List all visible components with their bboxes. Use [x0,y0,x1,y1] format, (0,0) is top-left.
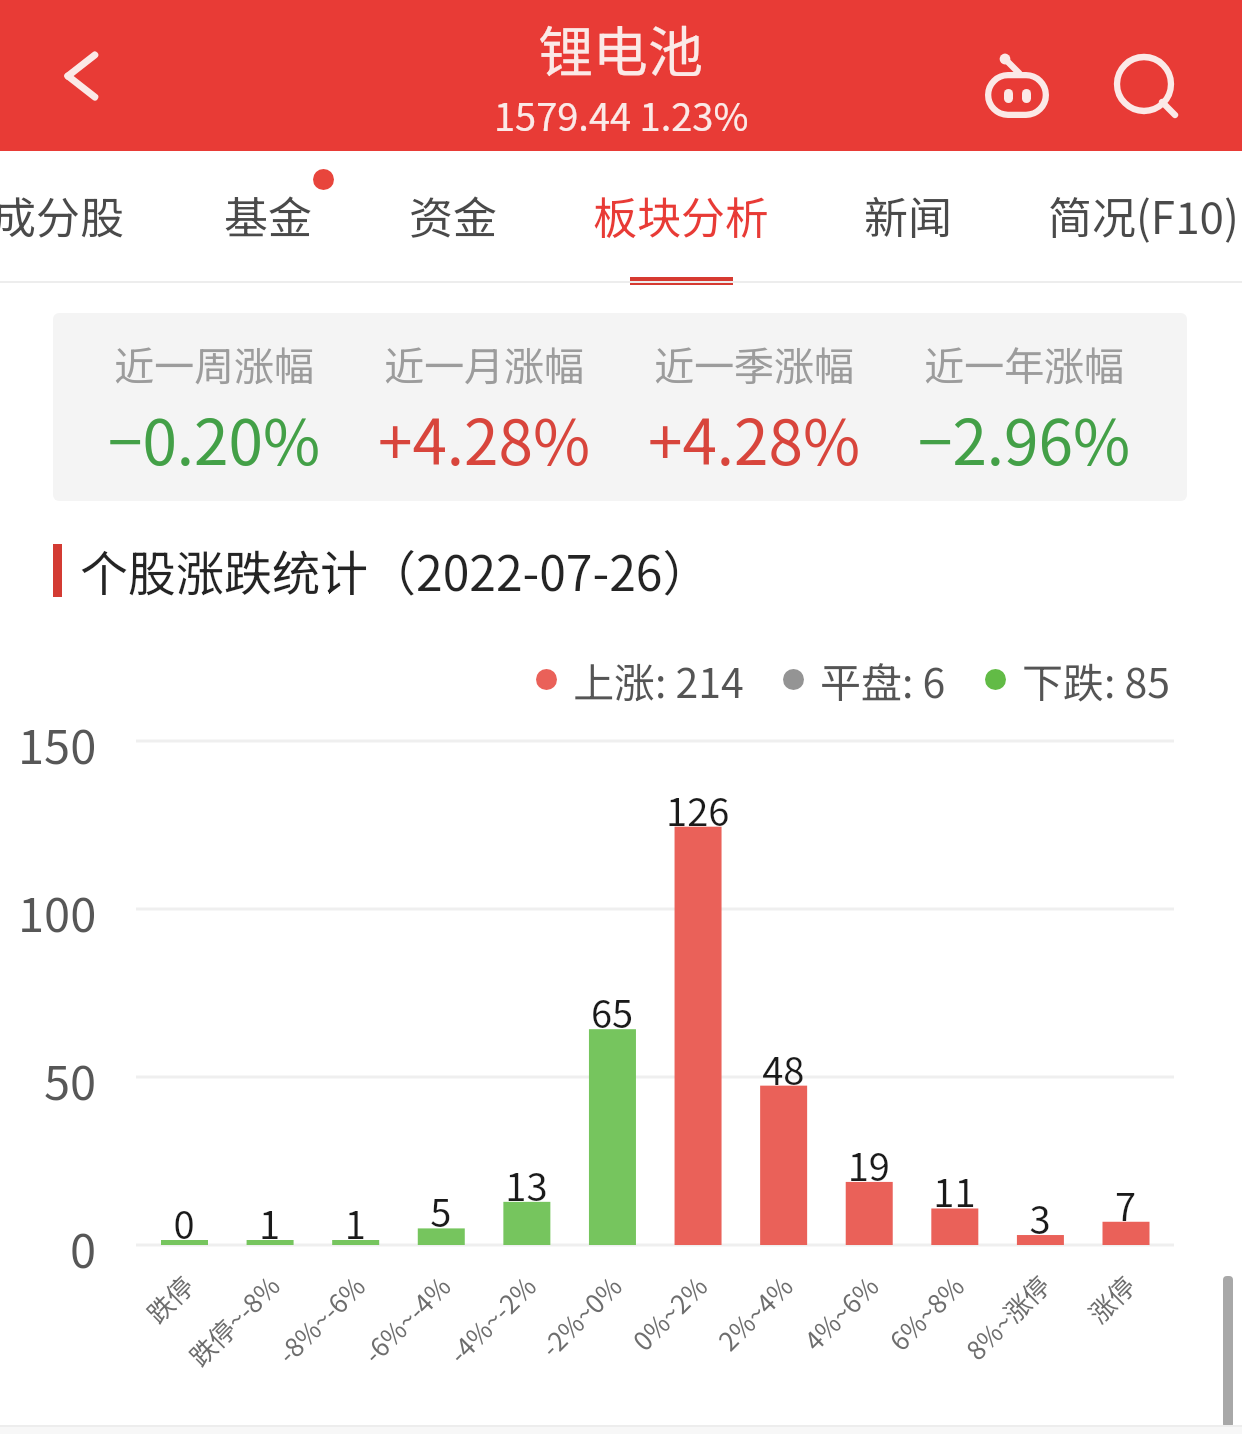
staticText: 新闻 [864,183,952,247]
staticText: 近一季涨幅 [654,335,854,393]
staticText: −2.96% [918,393,1130,483]
button[interactable]: 资金 [343,151,563,283]
button[interactable]: 近一年涨幅 [889,313,1159,501]
staticText: 下跌: 85 [1022,650,1171,709]
staticText: 资金 [409,183,497,247]
button[interactable]: 近一季涨幅 [619,313,889,501]
staticText: +4.28% [648,393,860,483]
button[interactable]: 新闻 [798,151,1018,283]
staticText: −0.20% [108,393,320,483]
staticText: 近一月涨幅 [384,335,584,393]
button[interactable]: 板块分析 [571,151,791,283]
button[interactable]: 基金 [158,151,378,283]
staticText: 1579.44 1.23% [494,87,749,142]
button[interactable]: 近一月涨幅 [349,313,619,501]
button[interactable]: 平盘: 6 [783,650,946,709]
button[interactable]: AI assistant [957,35,1077,155]
staticText: 简况(F10) [1048,183,1239,247]
button[interactable]: Back [22,0,142,151]
button[interactable]: 上涨: 214 [536,650,744,709]
staticText: 个股涨跌统计（2022-07-26） [80,535,711,605]
staticText: 平盘: 6 [820,650,946,709]
staticText: 锂电池 [538,8,704,88]
button[interactable]: 近一周涨幅 [79,313,349,501]
staticText: 成分股 [0,183,124,247]
staticText: 近一周涨幅 [114,335,314,393]
button[interactable]: 下跌: 85 [985,650,1171,709]
staticText: 板块分析 [593,183,769,247]
staticText: +4.28% [378,393,590,483]
button[interactable]: Search [1084,24,1204,144]
button[interactable]: 成分股 [0,151,168,283]
staticText: 上涨: 214 [573,650,744,709]
staticText: 近一年涨幅 [924,335,1124,393]
button[interactable]: 简况(F10) [1033,151,1242,283]
staticText: 基金 [224,183,312,247]
